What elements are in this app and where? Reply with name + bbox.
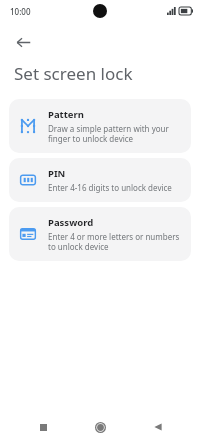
staticText: Set screen lock <box>14 62 133 85</box>
button[interactable]: Back <box>9 28 37 56</box>
button[interactable]: Back <box>143 412 173 442</box>
other: Pattern <box>20 118 36 134</box>
staticText: Enter 4 or more letters or numbers to un… <box>48 231 183 252</box>
button[interactable]: Password <box>9 207 191 261</box>
staticText: PIN <box>48 167 66 180</box>
other: PIN <box>20 172 36 188</box>
button[interactable]: Recent apps <box>28 412 58 442</box>
button[interactable]: PIN <box>9 158 191 202</box>
button[interactable]: Home <box>85 412 115 442</box>
staticText: Draw a simple pattern with your finger t… <box>48 123 183 144</box>
staticText: Pattern <box>48 108 84 121</box>
other: Password <box>20 226 36 242</box>
staticText: Enter 4-16 digits to unlock device <box>48 182 172 193</box>
button[interactable]: Pattern <box>9 99 191 153</box>
staticText: Password <box>48 216 94 229</box>
staticText: 10:00 <box>10 6 31 17</box>
